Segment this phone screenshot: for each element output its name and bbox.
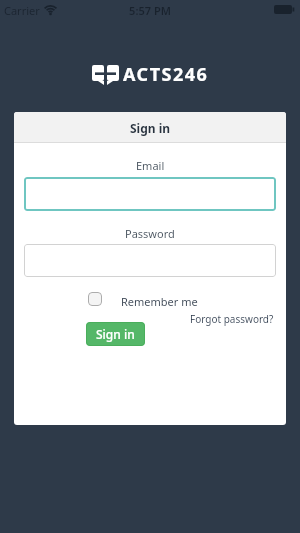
staticText: Sign in [130,120,171,136]
staticText: Forgot password? [190,312,274,326]
staticText: Email [136,158,165,173]
staticText: Sign in [96,326,135,342]
staticText: Remember me [121,294,198,309]
staticText: ACTS246 [123,62,209,87]
staticText: Carrier [4,3,40,18]
staticText: Password [125,226,175,241]
staticText: 5:57 PM [0,3,300,18]
